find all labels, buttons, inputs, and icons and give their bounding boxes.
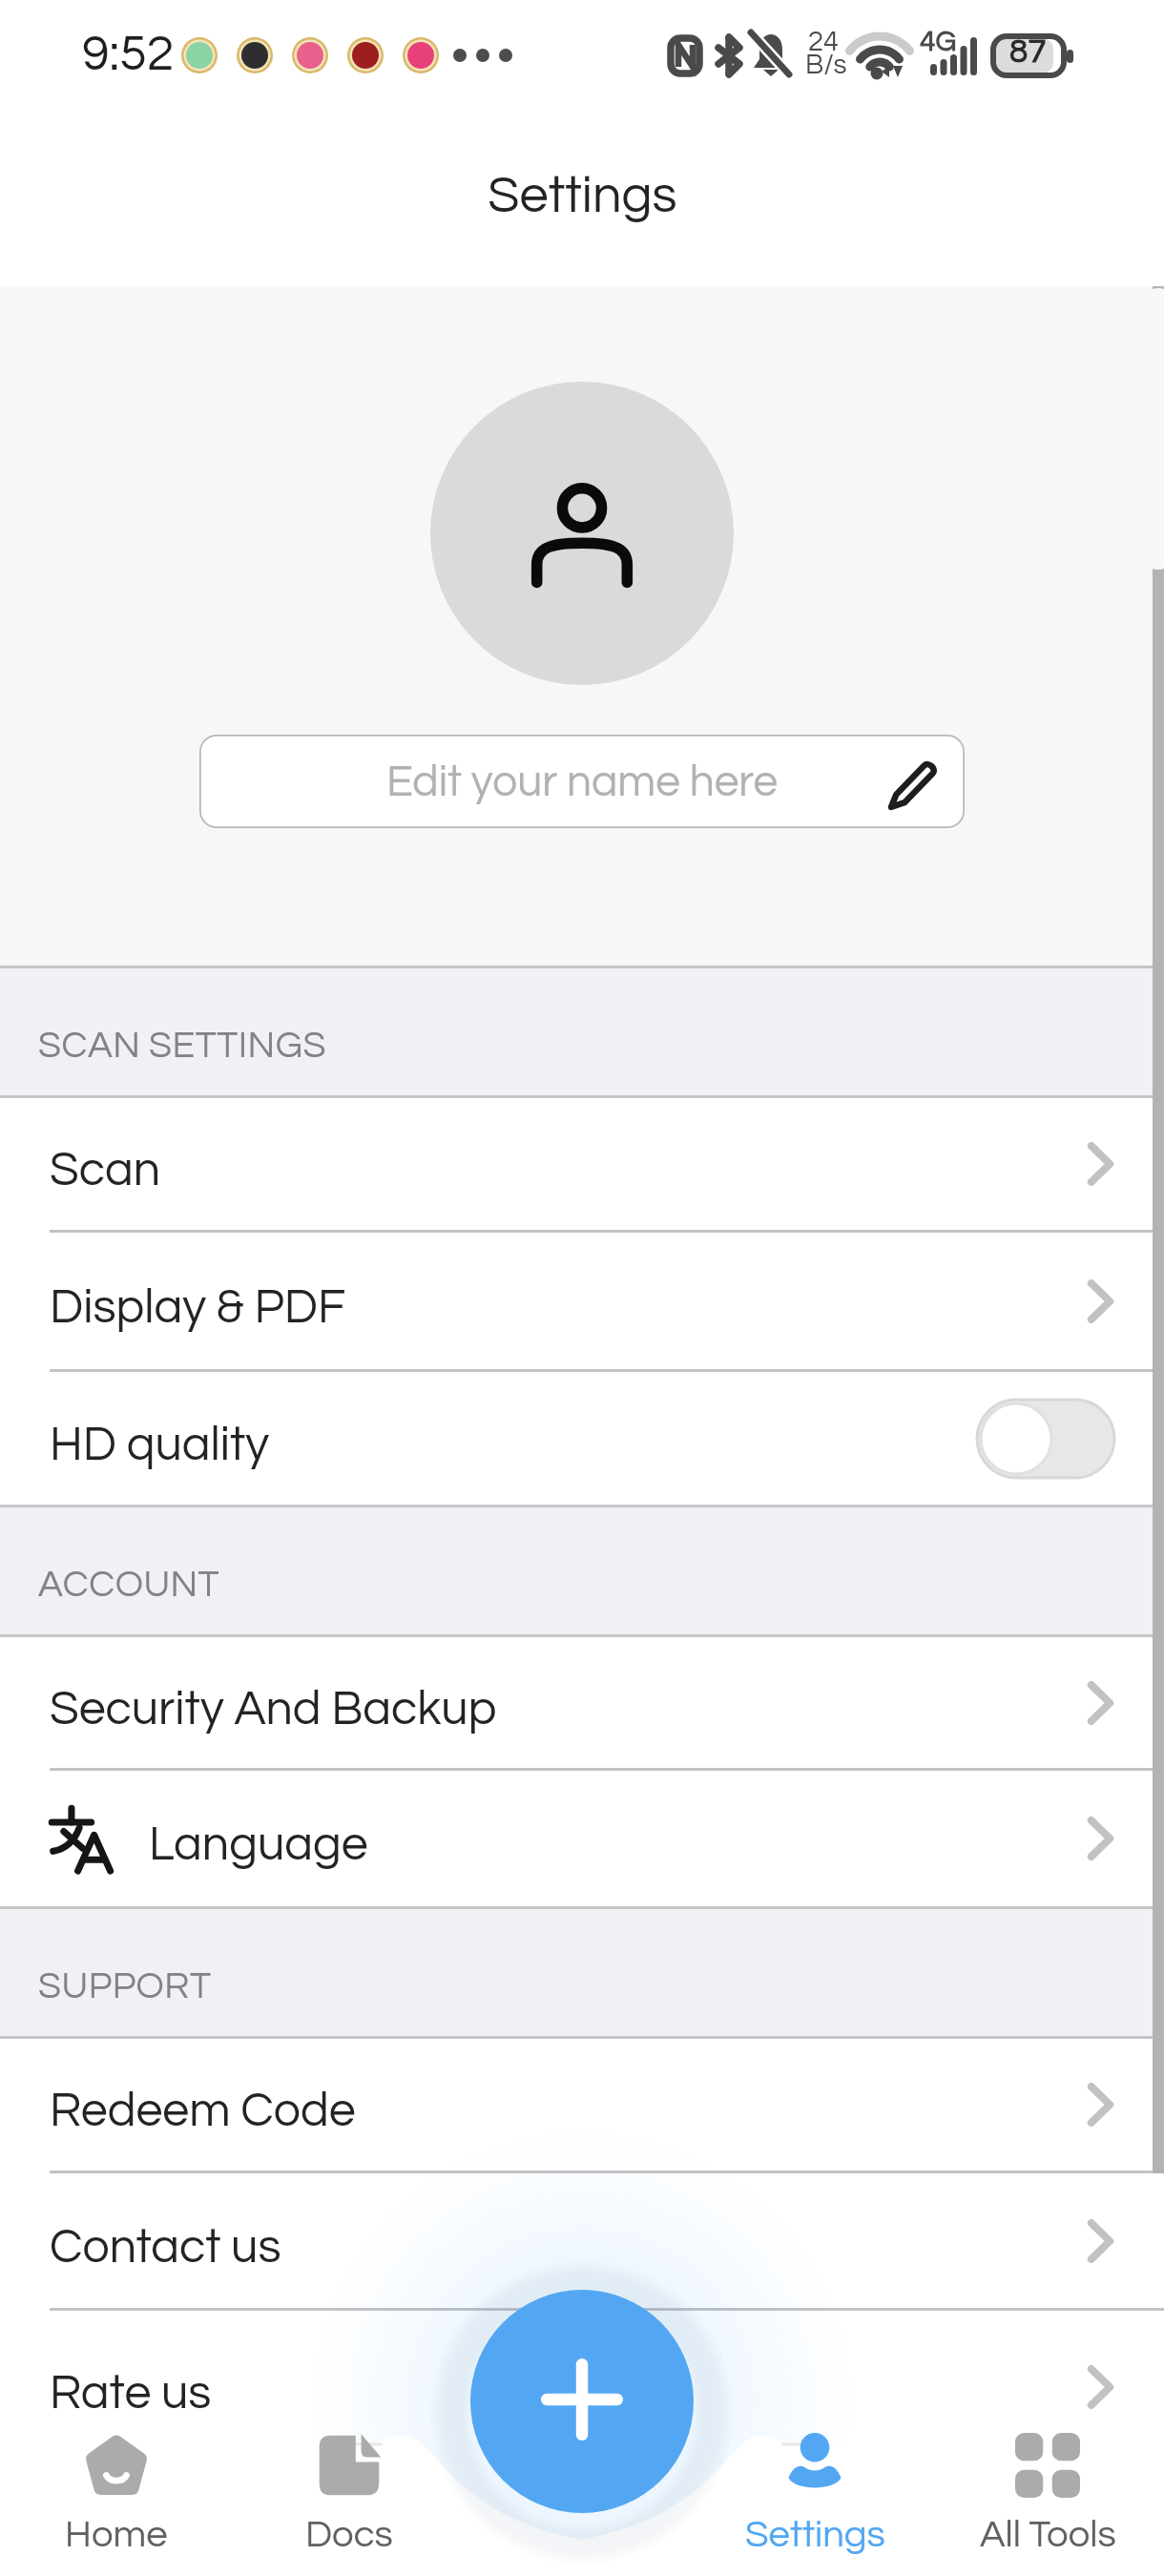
button[interactable]: Settings bbox=[698, 2194, 931, 2576]
staticText: 87 bbox=[1009, 34, 1047, 69]
staticText: Docs bbox=[305, 2515, 393, 2554]
staticText: Redeem Code bbox=[50, 2087, 356, 2136]
button[interactable]: Docs bbox=[233, 2194, 466, 2576]
button[interactable]: Contact us bbox=[0, 2173, 1164, 2311]
button[interactable]: Display & PDF bbox=[0, 1233, 1164, 1372]
staticText: Language bbox=[149, 1820, 368, 1870]
button[interactable]: Home bbox=[0, 2194, 233, 2576]
staticText: HD quality bbox=[50, 1421, 270, 1470]
staticText: 24 bbox=[808, 28, 839, 56]
button[interactable]: HD quality bbox=[0, 1372, 1164, 1505]
staticText: Display & PDF bbox=[50, 1283, 346, 1333]
button[interactable]: Language bbox=[0, 1771, 1164, 1906]
button[interactable]: All Tools bbox=[931, 2194, 1164, 2576]
staticText: Scan bbox=[50, 1146, 160, 1195]
button[interactable]: Scan bbox=[0, 1098, 1164, 1233]
staticText: 9:52 bbox=[82, 29, 175, 80]
button[interactable]: Profile photo bbox=[430, 382, 734, 685]
staticText: B/s bbox=[805, 51, 847, 79]
staticText: Settings bbox=[488, 170, 677, 223]
staticText: Home bbox=[65, 2515, 168, 2554]
button[interactable]: Redeem Code bbox=[0, 2039, 1164, 2173]
staticText: SCAN SETTINGS bbox=[38, 1027, 326, 1065]
staticText: 4G bbox=[920, 27, 957, 56]
staticText: Security And Backup bbox=[50, 1685, 497, 1735]
staticText: Settings bbox=[745, 2515, 885, 2554]
button[interactable]: Security And Backup bbox=[0, 1637, 1164, 1771]
staticText: All Tools bbox=[980, 2515, 1116, 2554]
staticText: Rate us bbox=[50, 2369, 212, 2419]
staticText: ACCOUNT bbox=[38, 1566, 220, 1604]
staticText: Edit your name here bbox=[386, 759, 779, 804]
staticText: SUPPORT bbox=[38, 1967, 212, 2005]
button[interactable]: Rate us bbox=[0, 2311, 1164, 2463]
button[interactable]: Add bbox=[470, 2290, 694, 2513]
staticText: Contact us bbox=[50, 2223, 281, 2273]
button[interactable]: Edit your name here bbox=[199, 735, 965, 828]
